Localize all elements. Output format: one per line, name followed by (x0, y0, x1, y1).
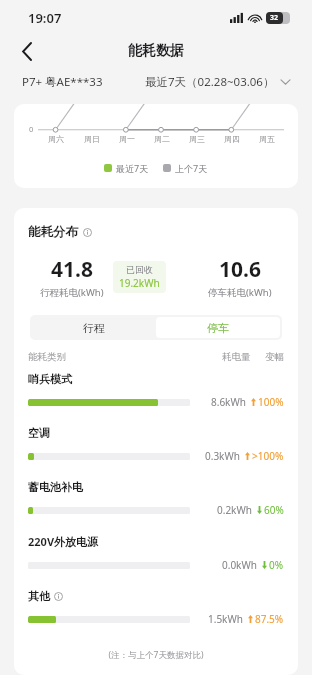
staticText: 0% (269, 558, 284, 572)
staticText: 最近7天（02.28~03.06） (145, 74, 275, 90)
button[interactable]: 空调 (14, 426, 298, 480)
staticText: 已回收 (126, 264, 153, 275)
button[interactable]: Back (10, 36, 44, 66)
staticText: 周日 (84, 134, 100, 144)
staticText: 能耗数据 (128, 42, 184, 60)
staticText: 变幅 (265, 351, 284, 363)
staticText: 0.3kWh (205, 449, 240, 463)
staticText: 上个7天 (175, 162, 208, 174)
staticText: P7+ 粤AE***33 (22, 74, 103, 90)
staticText: (注：与上个7天数据对比) (14, 649, 298, 661)
button[interactable]: 其他 (14, 589, 298, 643)
button[interactable]: 最近7天（02.28~03.06） (145, 74, 290, 90)
staticText: 行程 (83, 321, 105, 335)
staticText: 能耗类别 (28, 351, 66, 363)
staticText: 周四 (224, 134, 240, 144)
staticText: 能耗分布 (28, 224, 78, 240)
staticText: 最近7天 (116, 162, 149, 174)
staticText: 周二 (154, 134, 170, 144)
button[interactable]: 行程 (32, 317, 156, 338)
staticText: 19:07 (28, 9, 62, 27)
staticText: 10.6 (219, 255, 261, 284)
staticText: 停车耗电(kWh) (208, 286, 272, 299)
staticText: 周五 (259, 134, 275, 144)
staticText: 60% (264, 503, 284, 517)
staticText: 41.8 (51, 255, 93, 284)
button[interactable]: 停车 (156, 317, 280, 338)
button[interactable]: P7+ 粤AE***33 (22, 74, 103, 90)
staticText: 100% (258, 395, 284, 409)
staticText: 32 (270, 13, 279, 23)
staticText: 19.2kWh (119, 276, 160, 290)
staticText: 耗电量 (222, 351, 251, 363)
staticText: 停车 (207, 321, 229, 335)
button[interactable]: 哨兵模式 (14, 372, 298, 426)
staticText: 8.6kWh (211, 395, 246, 409)
staticText: 周一 (119, 134, 135, 144)
staticText: 周三 (189, 134, 205, 144)
staticText: 0.2kWh (217, 503, 252, 517)
staticText: 空调 (28, 426, 50, 440)
button[interactable]: 蓄电池补电 (14, 480, 298, 534)
staticText: 0 (29, 124, 34, 134)
staticText: 周六 (48, 134, 64, 144)
staticText: 87.5% (255, 612, 284, 626)
staticText: 220V外放电源 (28, 534, 99, 549)
staticText: 0.0kWh (222, 558, 257, 572)
staticText: 哨兵模式 (28, 372, 72, 386)
staticText: 其他 (28, 589, 50, 603)
staticText: 1.5kWh (208, 612, 243, 626)
button[interactable]: 220V外放电源 (14, 534, 298, 589)
staticText: 蓄电池补电 (28, 480, 83, 494)
staticText: >100% (252, 449, 284, 463)
staticText: 行程耗电(kWh) (40, 286, 104, 299)
